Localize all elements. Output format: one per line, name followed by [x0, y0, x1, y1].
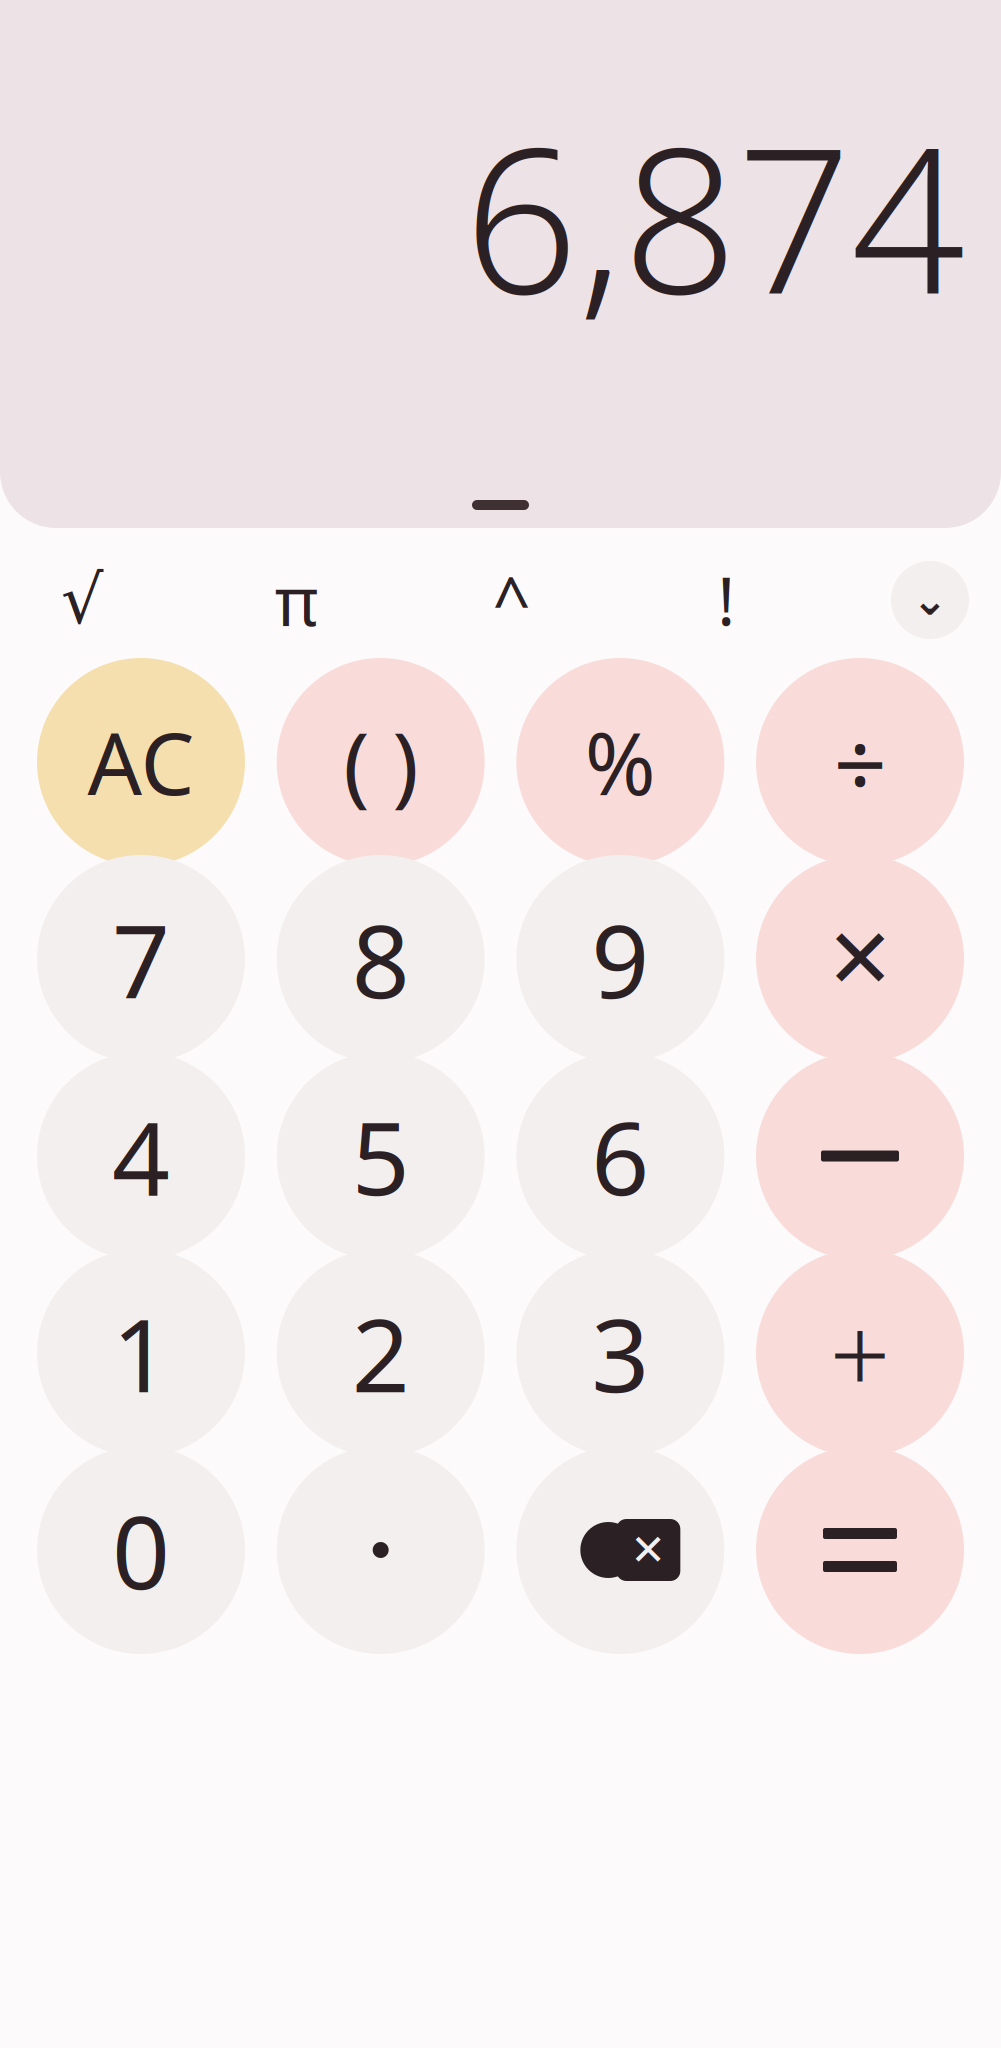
- button[interactable]: 2: [277, 1249, 485, 1457]
- staticText: 4: [112, 1089, 170, 1223]
- staticText: ^: [492, 556, 530, 644]
- button[interactable]: 1: [37, 1249, 245, 1457]
- button[interactable]: 4: [37, 1052, 245, 1260]
- staticText: +: [829, 1282, 890, 1424]
- button[interactable]: Parentheses: [277, 658, 485, 866]
- staticText: ✕: [825, 912, 894, 1006]
- button[interactable]: √: [32, 550, 132, 650]
- staticText: 9: [591, 892, 649, 1026]
- button[interactable]: 6: [516, 1052, 724, 1260]
- button[interactable]: ^: [461, 550, 561, 650]
- button[interactable]: Resize display: [412, 488, 589, 522]
- button[interactable]: 8: [277, 855, 485, 1063]
- button[interactable]: 0: [37, 1446, 245, 1654]
- button[interactable]: Equals: [756, 1446, 964, 1654]
- staticText: π: [275, 556, 319, 644]
- button[interactable]: More functions: [891, 561, 969, 639]
- staticText: 6: [591, 1089, 649, 1223]
- staticText: √: [61, 562, 103, 638]
- staticText: ⌄: [912, 576, 948, 624]
- button[interactable]: 3: [516, 1249, 724, 1457]
- staticText: ÷: [833, 700, 886, 824]
- button[interactable]: !: [676, 550, 776, 650]
- staticText: 1: [112, 1286, 170, 1420]
- button[interactable]: All clear: [37, 658, 245, 866]
- staticText: 5: [352, 1089, 410, 1223]
- button[interactable]: Multiply: [756, 855, 964, 1063]
- button[interactable]: Minus: [756, 1052, 964, 1260]
- staticText: !: [717, 556, 735, 644]
- staticText: AC: [87, 705, 194, 819]
- staticText: 7: [112, 892, 170, 1026]
- button[interactable]: Delete: [516, 1446, 724, 1654]
- staticText: 8: [352, 892, 410, 1026]
- button[interactable]: Percent: [516, 658, 724, 866]
- staticText: 6,874: [464, 83, 965, 349]
- staticText: 0: [112, 1483, 170, 1617]
- staticText: %: [585, 705, 656, 819]
- button[interactable]: 9: [516, 855, 724, 1063]
- button[interactable]: 7: [37, 855, 245, 1063]
- button[interactable]: 5: [277, 1052, 485, 1260]
- button[interactable]: Plus: [756, 1249, 964, 1457]
- staticText: 2: [352, 1286, 410, 1420]
- button[interactable]: π: [247, 550, 347, 650]
- staticText: ( ): [343, 704, 418, 820]
- button[interactable]: Decimal point: [277, 1446, 485, 1654]
- staticText: ✕: [630, 1526, 666, 1574]
- button[interactable]: Divide: [756, 658, 964, 866]
- staticText: 3: [591, 1286, 649, 1420]
